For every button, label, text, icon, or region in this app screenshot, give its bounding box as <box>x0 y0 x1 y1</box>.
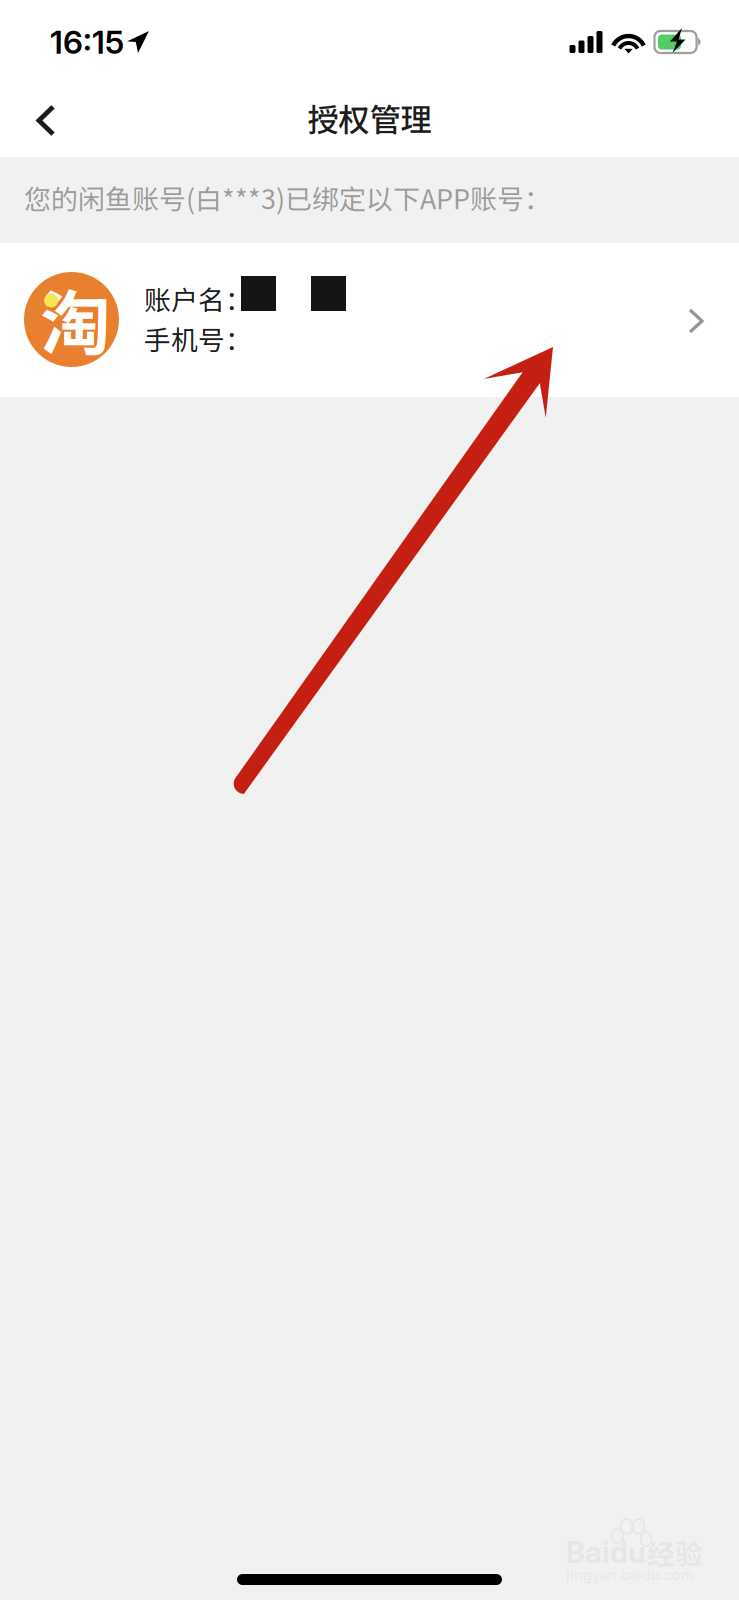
staticText: jingyan.baidu.com <box>566 1566 694 1584</box>
staticText: 账户名： <box>144 279 252 318</box>
button[interactable]: 淘 <box>0 243 739 397</box>
staticText: Baidu <box>566 1534 646 1570</box>
button[interactable]: Back <box>0 84 94 156</box>
staticText: 您的闲鱼账号(白***3)已绑定以下APP账号： <box>24 178 551 217</box>
staticText: 经验 <box>647 1532 703 1572</box>
staticText: 16:15 <box>50 23 124 61</box>
staticText: 淘 <box>40 267 111 370</box>
staticText: 手机号： <box>144 319 252 358</box>
staticText: 授权管理 <box>307 95 431 140</box>
